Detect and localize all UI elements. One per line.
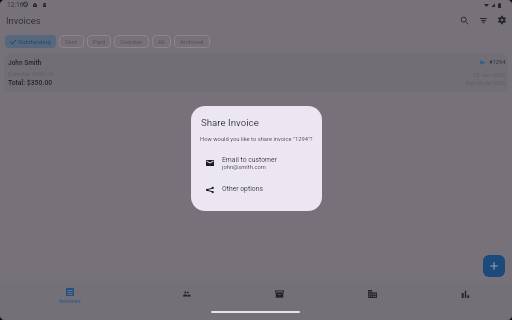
staticText: Outstanding [18,38,51,45]
button[interactable]: Tab [163,284,209,308]
button[interactable]: Overdue [114,35,149,48]
staticText: How would you like to share invoice "129… [200,136,313,143]
button[interactable]: Email to customer [191,154,322,178]
button[interactable]: Create invoice [483,255,505,277]
staticText: Paid [93,38,105,45]
staticText: 12:16 [7,1,24,9]
button[interactable]: Filter [475,12,491,28]
staticText: Share Invoice [201,117,259,128]
staticText: Archived [180,38,204,45]
staticText: Email to customer [222,156,277,164]
button[interactable]: All [152,35,171,48]
button[interactable]: Tab [349,284,395,308]
staticText: john@smith.com [222,164,266,171]
staticText: Other options [222,185,263,193]
button[interactable]: Tab [442,284,488,308]
staticText: John Smith [8,59,42,67]
button[interactable]: Invoices [47,284,93,308]
staticText: Invoices [6,15,41,26]
staticText: Overdue [120,38,143,45]
button[interactable]: Tab [256,284,302,308]
staticText: #1294 [489,59,506,66]
button[interactable]: Sent [59,35,84,48]
button[interactable]: John Smith [4,53,508,92]
staticText: 28 Jun 2025 [473,72,506,79]
button[interactable]: Archived [174,35,210,48]
staticText: All [158,38,165,45]
button[interactable]: Search [456,12,472,28]
button[interactable]: Paid [87,35,111,48]
staticText: Subtotal: $350.00 [8,71,54,78]
button[interactable]: Outstanding [5,35,56,48]
staticText: Total: $350.00 [8,79,53,87]
button[interactable]: Other options [191,182,322,202]
staticText: Invoices [59,298,81,305]
staticText: Sent [65,38,78,45]
button[interactable]: Settings [494,12,510,28]
staticText: Due 28 Jul 2025 [466,80,506,86]
